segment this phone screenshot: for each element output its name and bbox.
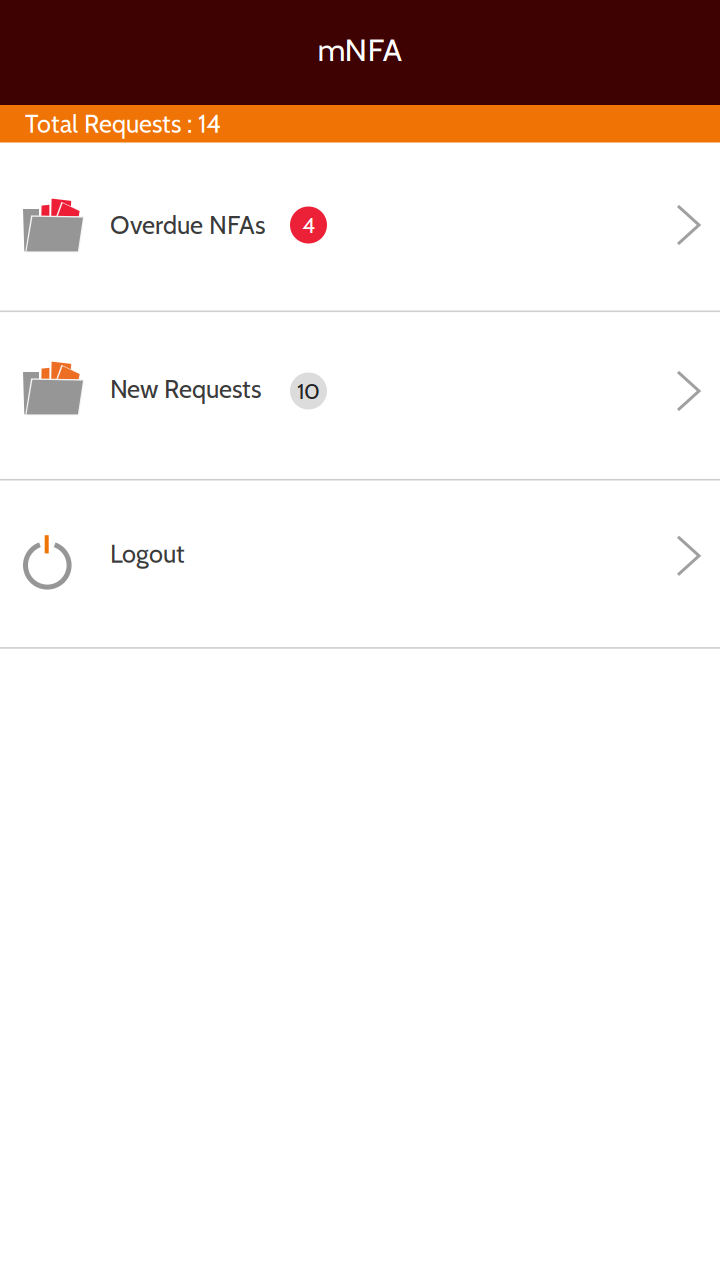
staticText: Overdue NFAs — [110, 210, 265, 240]
staticText: Logout — [110, 538, 185, 569]
staticText: Total Requests : 14 — [25, 108, 221, 139]
button[interactable]: Logout — [0, 480, 720, 649]
staticText: New Requests — [110, 374, 261, 404]
button[interactable]: New Requests — [0, 312, 720, 480]
staticText: mNFA — [317, 31, 402, 69]
staticText: 10 — [297, 377, 320, 405]
staticText: 4 — [302, 211, 315, 239]
button[interactable]: Overdue NFAs — [0, 142, 720, 312]
